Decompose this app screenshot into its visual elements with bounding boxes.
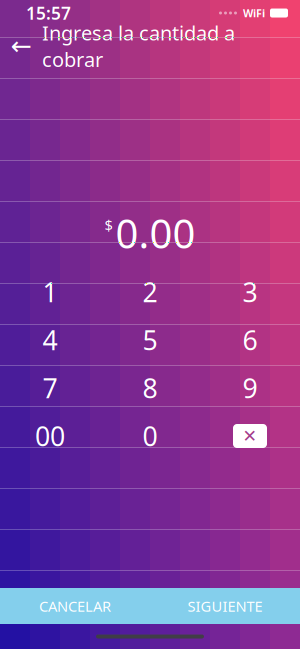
button[interactable]: 2 [100, 268, 200, 316]
button[interactable]: CANCELAR [0, 588, 150, 624]
staticText: 0 [142, 418, 157, 454]
staticText: 6 [242, 322, 257, 358]
staticText: WiFi [243, 6, 265, 20]
button[interactable]: 5 [100, 316, 200, 364]
staticText: 0.00 [115, 206, 195, 259]
staticText: 9 [242, 370, 257, 406]
button[interactable]: 8 [100, 364, 200, 412]
button[interactable]: 4 [0, 316, 100, 364]
staticText: 15:57 [26, 1, 71, 24]
staticText: ✕ [242, 426, 257, 446]
staticText: SIGUIENTE [187, 596, 262, 616]
button[interactable]: Back [0, 26, 42, 66]
staticText: 4 [42, 322, 57, 358]
staticText: 7 [42, 370, 57, 406]
staticText: 3 [242, 274, 257, 310]
button[interactable]: 0 [100, 412, 200, 460]
staticText: $ [104, 215, 112, 235]
button[interactable]: 3 [200, 268, 300, 316]
button[interactable]: SIGUIENTE [150, 588, 300, 624]
staticText: 5 [142, 322, 157, 358]
staticText: 8 [142, 370, 157, 406]
button[interactable]: Delete [200, 412, 300, 460]
staticText: 2 [142, 274, 157, 310]
staticText: ← [10, 32, 31, 60]
button[interactable]: 1 [0, 268, 100, 316]
button[interactable]: 7 [0, 364, 100, 412]
button[interactable]: 00 [0, 412, 100, 460]
staticText: CANCELAR [39, 596, 111, 616]
button[interactable]: 6 [200, 316, 300, 364]
button[interactable]: 9 [200, 364, 300, 412]
staticText: 1 [42, 274, 57, 310]
staticText: 00 [35, 418, 65, 454]
staticText: Ingresa la cantidad a cobrar [42, 19, 235, 72]
